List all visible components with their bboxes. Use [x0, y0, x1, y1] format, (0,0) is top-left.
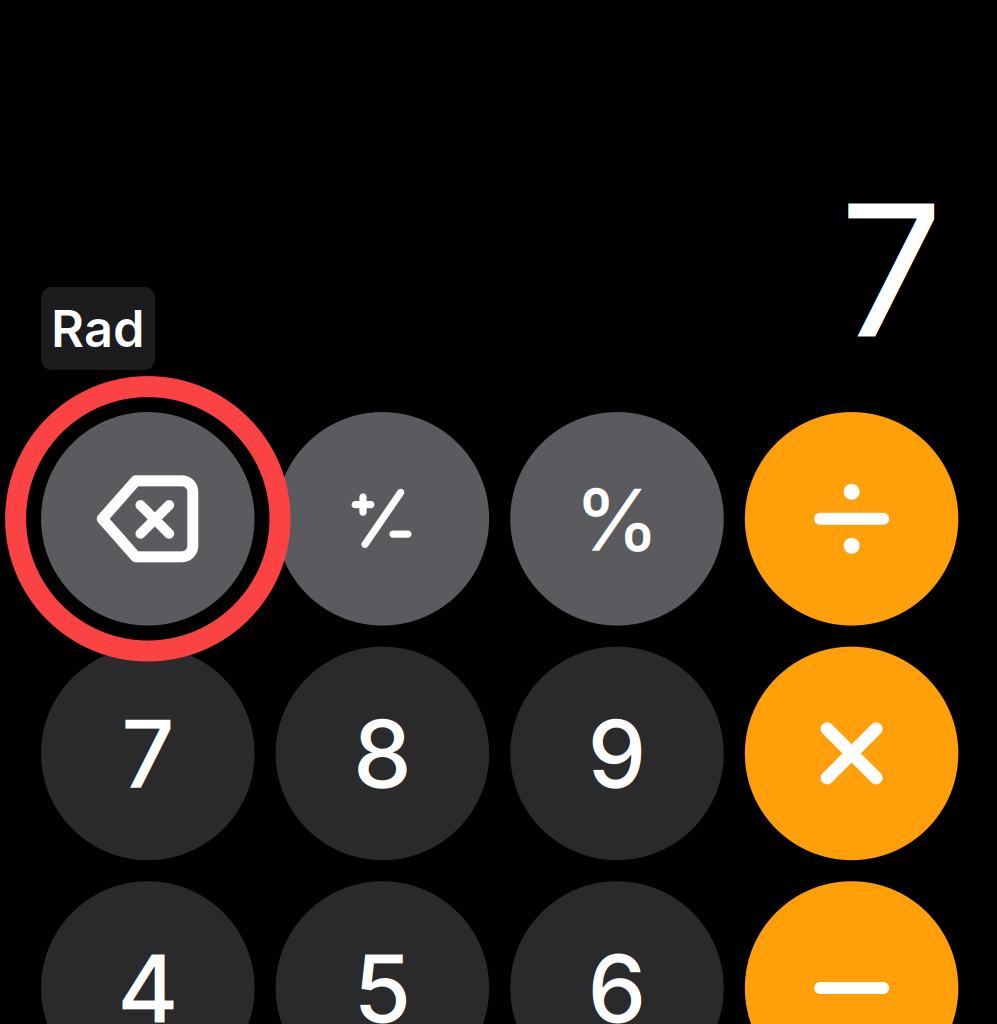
button[interactable]: 8: [276, 647, 489, 860]
staticText: 5: [353, 932, 411, 1024]
button[interactable]: 6: [510, 881, 724, 1024]
button[interactable]: Plus minus: [276, 412, 489, 625]
staticText: 9: [587, 697, 646, 810]
button[interactable]: 9: [510, 647, 724, 860]
button[interactable]: Multiply: [745, 647, 958, 860]
button[interactable]: 7: [41, 647, 255, 860]
button[interactable]: Divide: [745, 412, 958, 625]
button[interactable]: Delete: [41, 412, 255, 625]
staticText: 8: [353, 697, 412, 810]
staticText: 7: [839, 159, 942, 380]
button[interactable]: Percent: [510, 412, 724, 625]
staticText: Rad: [51, 298, 145, 359]
staticText: 6: [587, 932, 646, 1024]
staticText: %: [574, 468, 659, 571]
button[interactable]: 4: [41, 881, 255, 1024]
staticText: 4: [117, 932, 178, 1024]
button[interactable]: Rad: [41, 287, 155, 370]
button[interactable]: Subtract: [745, 881, 958, 1024]
button[interactable]: 5: [276, 881, 489, 1024]
staticText: 7: [121, 697, 174, 810]
